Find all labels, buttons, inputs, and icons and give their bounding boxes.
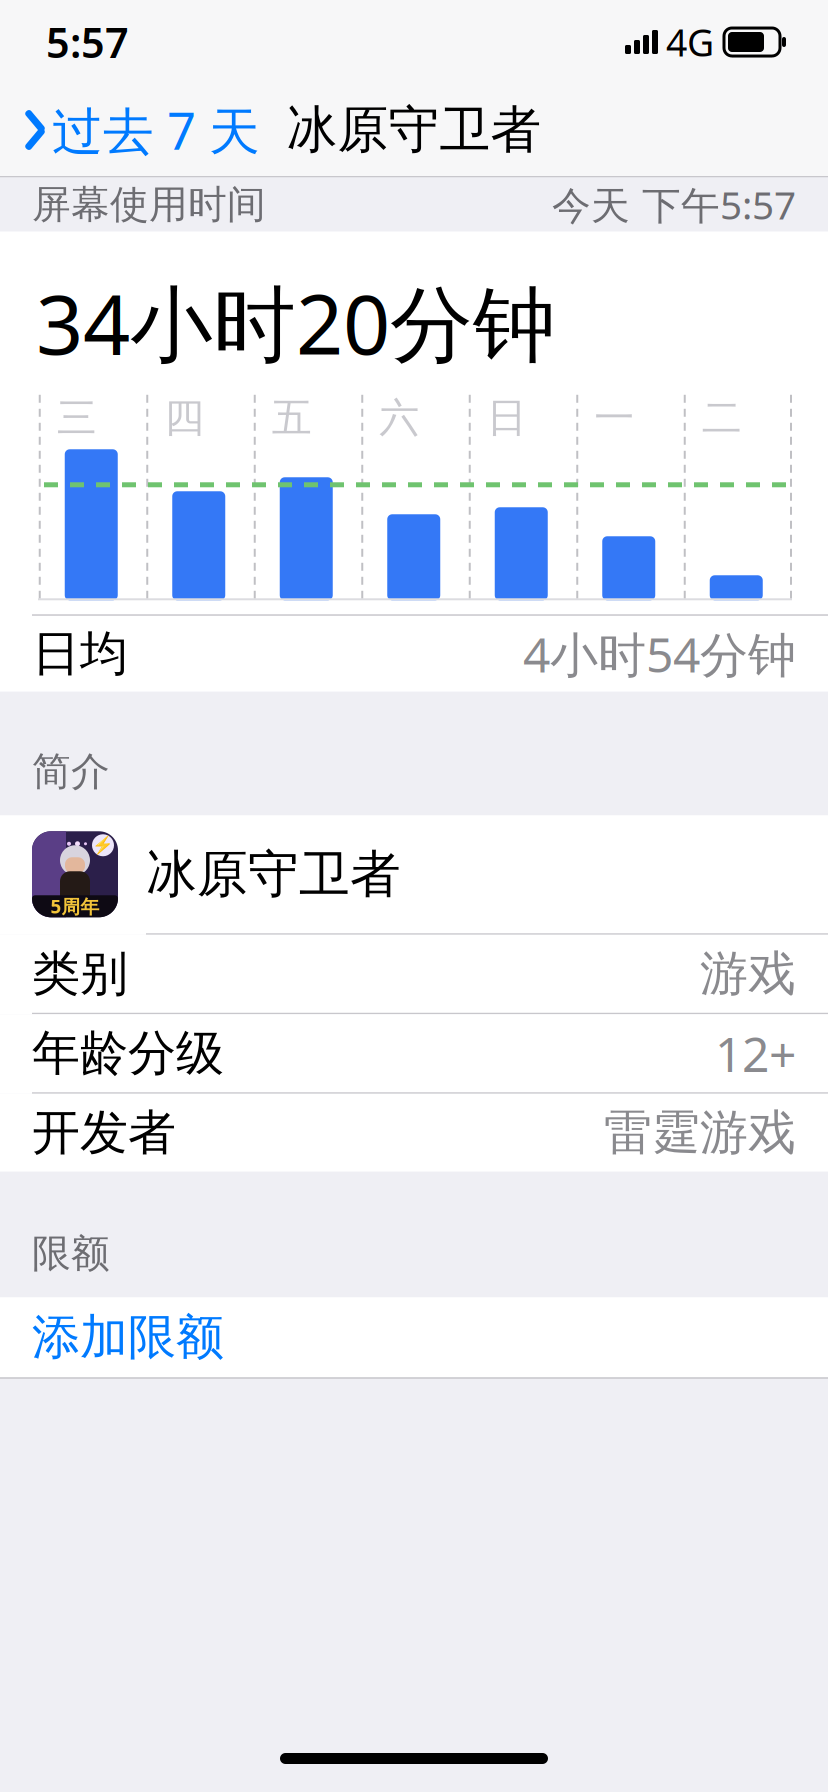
staticText: 雷霆游戏 bbox=[604, 1103, 796, 1162]
staticText: 简介 bbox=[32, 748, 110, 795]
staticText: 冰原守卫者 bbox=[286, 99, 541, 161]
staticText: 开发者 bbox=[32, 1103, 176, 1162]
staticText: ⚡ bbox=[92, 835, 114, 855]
staticText: 限额 bbox=[32, 1230, 110, 1277]
button[interactable]: 过去 7 天 bbox=[0, 84, 272, 176]
staticText: 5周年 bbox=[50, 894, 99, 919]
staticText: 六 bbox=[379, 393, 419, 442]
button[interactable]: 年龄分级 bbox=[0, 1014, 828, 1094]
staticText: 4小时54分钟 bbox=[523, 622, 796, 686]
staticText: 添加限额 bbox=[32, 1308, 224, 1367]
staticText: 12+ bbox=[715, 1021, 796, 1085]
staticText: 冰原守卫者 bbox=[146, 843, 401, 905]
staticText: 游戏 bbox=[700, 944, 796, 1003]
staticText: 今天 下午5:57 bbox=[552, 179, 796, 230]
button[interactable]: ⚡ bbox=[0, 815, 828, 935]
staticText: 屏幕使用时间 bbox=[32, 181, 266, 228]
button[interactable]: 添加限额 bbox=[0, 1297, 828, 1377]
staticText: 过去 7 天 bbox=[52, 96, 260, 164]
staticText: 二 bbox=[702, 393, 742, 442]
staticText: 四 bbox=[164, 393, 204, 442]
staticText: 类别 bbox=[32, 944, 128, 1003]
staticText: 一 bbox=[594, 393, 634, 442]
button[interactable]: 开发者 bbox=[0, 1094, 828, 1172]
staticText: 五 bbox=[272, 393, 312, 442]
staticText: 年龄分级 bbox=[32, 1024, 224, 1083]
staticText: 日均 bbox=[32, 624, 128, 683]
staticText: 三 bbox=[57, 393, 97, 442]
staticText: 4G bbox=[666, 17, 714, 67]
button[interactable]: 类别 bbox=[0, 935, 828, 1014]
staticText: 日 bbox=[487, 393, 527, 442]
staticText: 5:57 bbox=[46, 15, 129, 69]
staticText: 34小时20分钟 bbox=[36, 267, 556, 377]
